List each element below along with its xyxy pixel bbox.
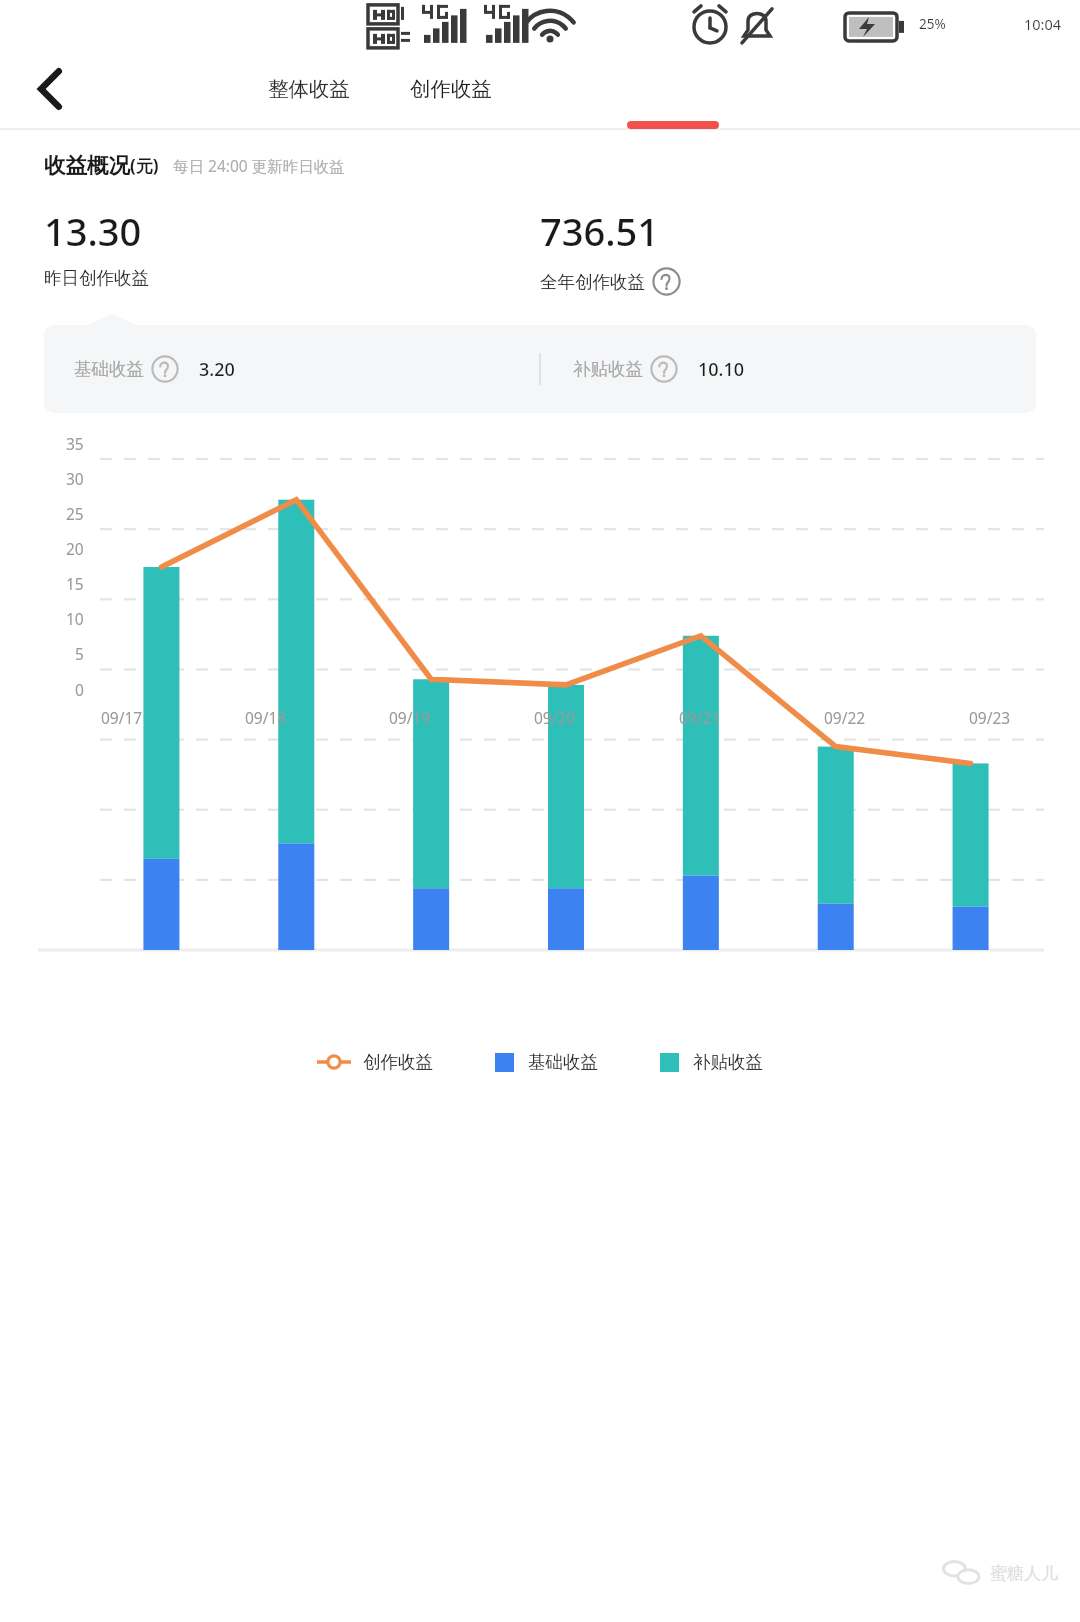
staticText: 收益概况: [44, 152, 130, 179]
staticText: 15: [66, 573, 84, 594]
staticText: 每日 24:00 更新昨日收益: [173, 155, 345, 176]
staticText: 0: [75, 679, 84, 700]
staticText: 10:04: [1024, 14, 1062, 34]
staticText: 全年创作收益: [540, 271, 645, 293]
staticText: 09/21: [679, 707, 721, 728]
staticText: 736.51: [540, 205, 660, 257]
button[interactable]: 基础收益: [491, 1047, 602, 1077]
button[interactable]: 创作收益: [404, 68, 498, 110]
staticText: 13.30: [44, 205, 142, 257]
staticText: 创作收益: [363, 1051, 433, 1073]
button[interactable]: 创作收益: [313, 1047, 437, 1077]
staticText: 10.10: [698, 357, 745, 382]
staticText: 09/19: [389, 707, 431, 728]
staticText: 3.20: [199, 357, 235, 382]
staticText: (元): [130, 154, 159, 177]
button[interactable]: 基础收益: [44, 325, 1036, 413]
button[interactable]: Back: [18, 55, 86, 123]
button[interactable]: 说明: [652, 267, 681, 296]
staticText: 35: [66, 433, 84, 454]
staticText: 创作收益: [410, 76, 492, 102]
staticText: 基础收益: [74, 358, 144, 380]
staticText: 09/17: [101, 707, 143, 728]
staticText: 25%: [919, 15, 946, 33]
staticText: 昨日创作收益: [44, 267, 149, 289]
button[interactable]: 说明: [151, 355, 179, 383]
button[interactable]: 整体收益: [262, 68, 356, 110]
staticText: 5: [75, 643, 84, 664]
staticText: 09/20: [534, 707, 576, 728]
button[interactable]: 补贴收益: [656, 1047, 767, 1077]
staticText: 20: [66, 538, 84, 559]
staticText: 基础收益: [528, 1051, 598, 1073]
staticText: 25: [66, 503, 84, 524]
staticText: 补贴收益: [693, 1051, 763, 1073]
staticText: 09/18: [245, 707, 287, 728]
staticText: 10: [66, 608, 84, 629]
staticText: 30: [66, 468, 84, 489]
staticText: 整体收益: [268, 76, 350, 102]
staticText: 09/22: [824, 707, 866, 728]
staticText: 补贴收益: [573, 358, 643, 380]
staticText: 蜜糖人儿: [990, 1563, 1058, 1584]
staticText: 09/23: [969, 707, 1011, 728]
button[interactable]: 说明: [650, 355, 678, 383]
